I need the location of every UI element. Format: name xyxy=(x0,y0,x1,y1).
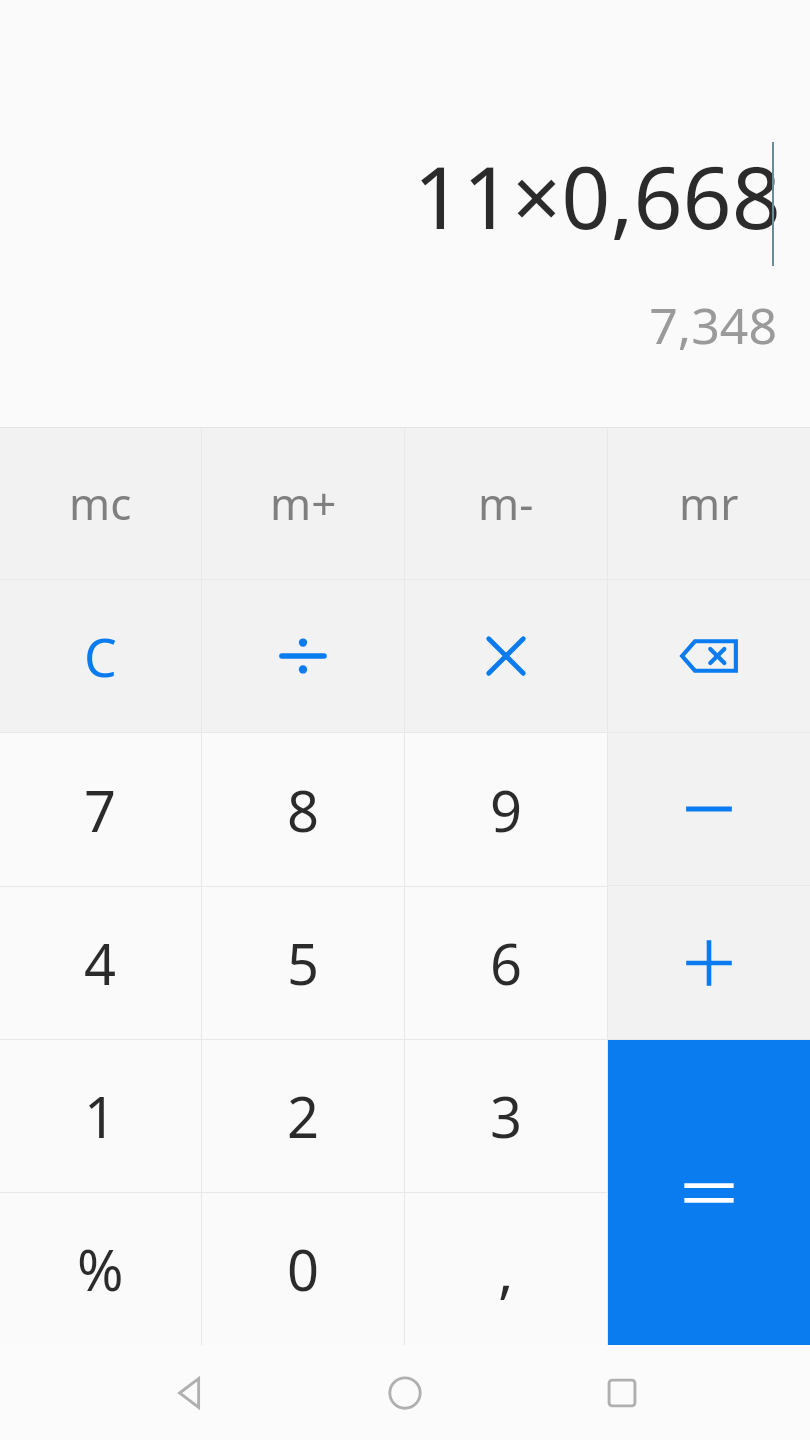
staticText: m+ xyxy=(270,473,337,533)
button[interactable]: % xyxy=(0,1193,201,1345)
staticText: 2 xyxy=(287,1078,320,1154)
staticText: 3 xyxy=(490,1078,523,1154)
button[interactable]: Home xyxy=(367,1355,443,1431)
button[interactable]: Divide xyxy=(202,580,404,732)
button[interactable]: C xyxy=(0,580,201,732)
button[interactable]: Backspace xyxy=(608,580,810,732)
button[interactable]: 0 xyxy=(202,1193,404,1345)
staticText: C xyxy=(84,621,117,692)
staticText: 1 xyxy=(84,1078,117,1154)
button[interactable]: Equals xyxy=(608,1040,810,1345)
staticText: 5 xyxy=(287,925,320,1001)
staticText: 9 xyxy=(490,772,523,848)
staticText: 11×0,668 xyxy=(413,137,781,254)
button[interactable]: Plus xyxy=(608,886,810,1039)
button[interactable]: Back xyxy=(150,1355,226,1431)
staticText: , xyxy=(498,1230,514,1309)
button[interactable]: , xyxy=(405,1193,607,1345)
button[interactable]: m- xyxy=(405,427,607,579)
button[interactable]: 3 xyxy=(405,1040,607,1192)
staticText: 0 xyxy=(287,1231,320,1307)
button[interactable]: Multiply xyxy=(405,580,607,732)
button[interactable]: mc xyxy=(0,427,201,579)
button[interactable]: 7 xyxy=(0,733,201,886)
button[interactable]: 4 xyxy=(0,887,201,1039)
button[interactable]: 9 xyxy=(405,733,607,886)
staticText: 7,348 xyxy=(649,291,777,359)
staticText: mc xyxy=(69,473,132,533)
button[interactable]: 2 xyxy=(202,1040,404,1192)
staticText: 8 xyxy=(287,772,320,848)
button[interactable]: 1 xyxy=(0,1040,201,1192)
button[interactable]: Minus xyxy=(608,733,810,885)
staticText: % xyxy=(77,1231,124,1307)
staticText: 6 xyxy=(490,925,523,1001)
button[interactable]: Recents xyxy=(584,1355,660,1431)
button[interactable]: mr xyxy=(608,427,810,579)
staticText: m- xyxy=(478,473,534,533)
button[interactable]: 8 xyxy=(202,733,404,886)
button[interactable]: 5 xyxy=(202,887,404,1039)
staticText: 4 xyxy=(84,925,117,1001)
button[interactable]: 6 xyxy=(405,887,607,1039)
other: Equals xyxy=(608,1040,810,1345)
button[interactable]: m+ xyxy=(202,427,404,579)
staticText: 7 xyxy=(84,772,117,848)
staticText: mr xyxy=(679,473,739,533)
